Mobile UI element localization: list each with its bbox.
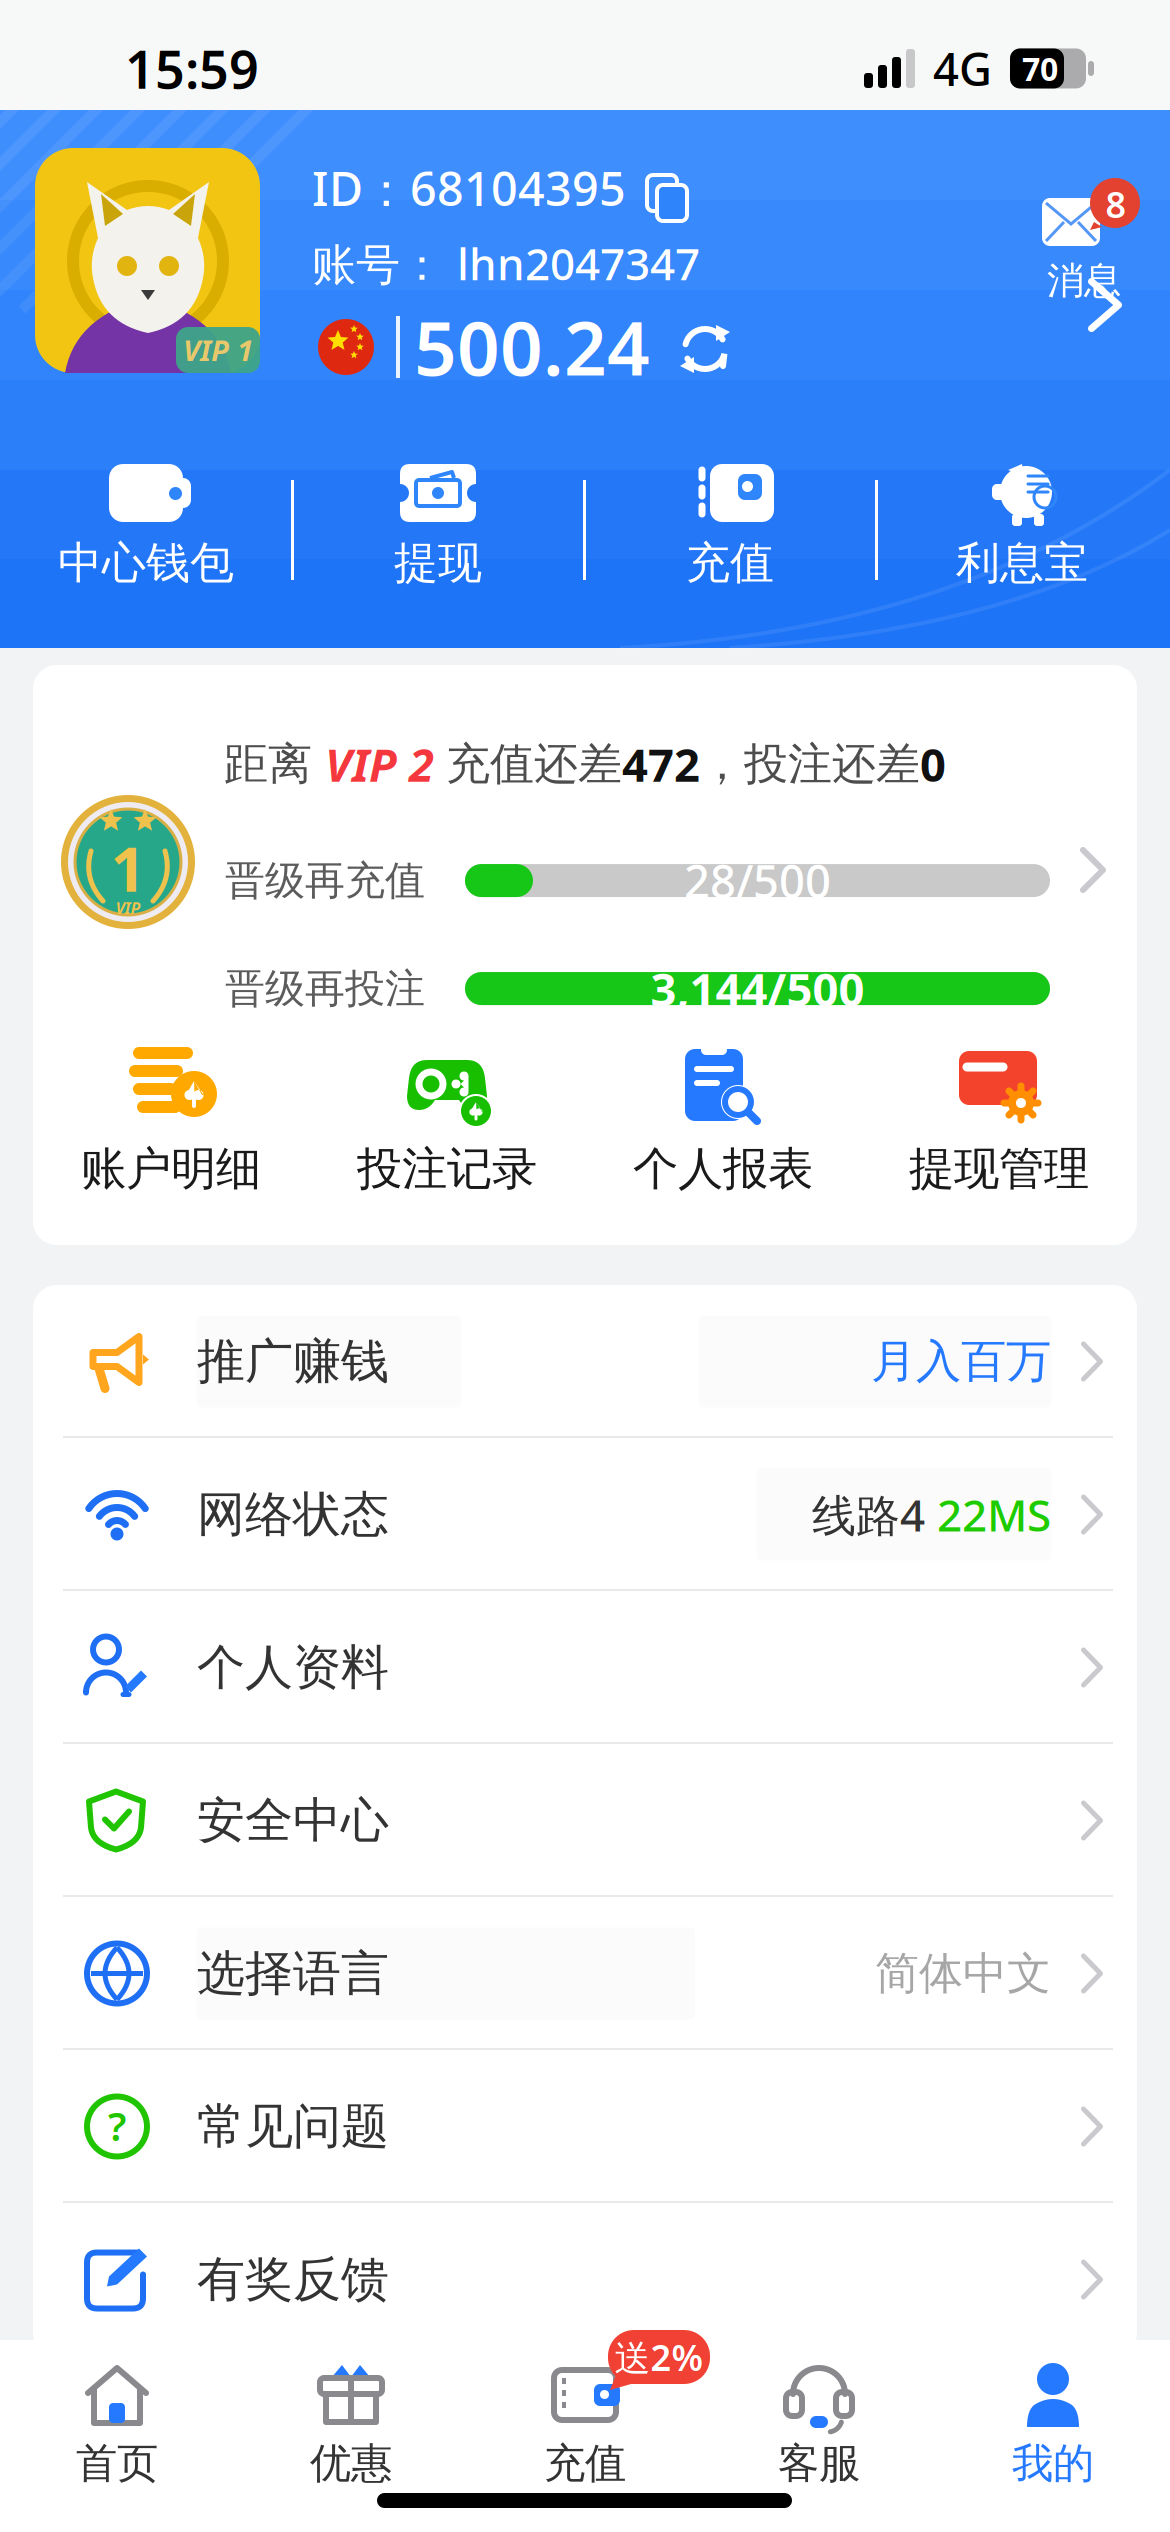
staticText: 简体中文: [875, 1946, 1051, 2000]
button[interactable]: 账户明细: [33, 1045, 309, 1197]
staticText: 选择语言: [197, 1944, 389, 2003]
staticText: 个人资料: [197, 1638, 389, 1697]
button[interactable]: 提现: [292, 462, 584, 590]
staticText: 中心钱包: [58, 536, 234, 590]
button[interactable]: 提现管理: [861, 1045, 1137, 1197]
staticText: ID：68104395: [312, 157, 626, 219]
button[interactable]: 个人资料: [33, 1591, 1137, 1744]
staticText: 账户明细: [81, 1141, 261, 1197]
button[interactable]: 充值: [584, 462, 876, 590]
button[interactable]: 有奖反馈: [33, 2203, 1137, 2356]
staticText: 客服: [778, 2438, 860, 2489]
staticText: 22MS: [937, 1485, 1051, 1544]
button[interactable]: 安全中心: [33, 1744, 1137, 1897]
staticText: 利息宝: [956, 536, 1088, 590]
staticText: 3,144/500: [650, 958, 864, 1019]
staticText: 充值: [544, 2438, 626, 2489]
staticText: 网络状态: [197, 1485, 389, 1544]
button[interactable]: 首页: [0, 2340, 234, 2489]
staticText: 提现: [394, 536, 482, 590]
staticText: 有奖反馈: [197, 2250, 389, 2309]
staticText: 70: [1022, 47, 1058, 90]
staticText: 0: [920, 734, 946, 794]
button[interactable]: 投注记录: [309, 1045, 585, 1197]
staticText: 送2%: [614, 2333, 703, 2381]
staticText: 线路4: [812, 1485, 925, 1544]
staticText: 472: [622, 734, 700, 794]
button[interactable]: 选择语言: [33, 1897, 1137, 2050]
button[interactable]: 客服: [702, 2340, 936, 2489]
staticText: 安全中心: [197, 1791, 389, 1850]
button[interactable]: 复制ID: [642, 170, 682, 216]
staticText: 28/500: [684, 850, 831, 911]
button[interactable]: 刷新余额: [678, 322, 732, 376]
button[interactable]: VIP等级进度: [33, 795, 1137, 1025]
staticText: 账号： lhn2047347: [312, 234, 700, 292]
button[interactable]: 充值: [468, 2340, 702, 2489]
staticText: 首页: [76, 2438, 158, 2489]
button[interactable]: 个人中心: [1088, 278, 1122, 332]
staticText: ?: [108, 2099, 126, 2152]
button[interactable]: 中心钱包: [0, 462, 292, 590]
button[interactable]: 头像: [35, 148, 260, 373]
button[interactable]: ?: [33, 2050, 1137, 2203]
button[interactable]: 网络状态: [33, 1438, 1137, 1591]
button[interactable]: 个人报表: [585, 1045, 861, 1197]
staticText: 我的: [1012, 2438, 1094, 2489]
staticText: 推广赚钱: [197, 1332, 389, 1391]
button[interactable]: 利息宝: [876, 462, 1168, 590]
staticText: 15:59: [125, 34, 259, 103]
staticText: VIP 2: [325, 734, 446, 794]
staticText: 个人报表: [633, 1141, 813, 1197]
staticText: VIP 1: [183, 330, 253, 369]
staticText: 晋级再投注: [225, 964, 425, 1013]
staticText: 充值还差: [446, 737, 622, 791]
staticText: 晋级再充值: [225, 856, 425, 905]
staticText: ，投注还差: [700, 737, 920, 791]
staticText: 距离: [224, 737, 325, 791]
button[interactable]: 消息: [1026, 135, 1128, 275]
staticText: 月入百万: [871, 1334, 1051, 1389]
staticText: 优惠: [310, 2438, 392, 2489]
staticText: 1: [110, 827, 145, 909]
button[interactable]: 优惠: [234, 2340, 468, 2489]
staticText: VIP: [115, 897, 140, 919]
staticText: 8: [1105, 180, 1126, 228]
staticText: 4G: [933, 38, 992, 99]
button[interactable]: 推广赚钱: [33, 1285, 1137, 1438]
staticText: 500.24: [414, 297, 650, 396]
staticText: 常见问题: [197, 2097, 389, 2156]
staticText: 消息: [1047, 258, 1121, 304]
staticText: 充值: [686, 536, 774, 590]
staticText: 提现管理: [909, 1141, 1089, 1197]
staticText: 投注记录: [357, 1141, 537, 1197]
button[interactable]: 我的: [936, 2340, 1170, 2489]
